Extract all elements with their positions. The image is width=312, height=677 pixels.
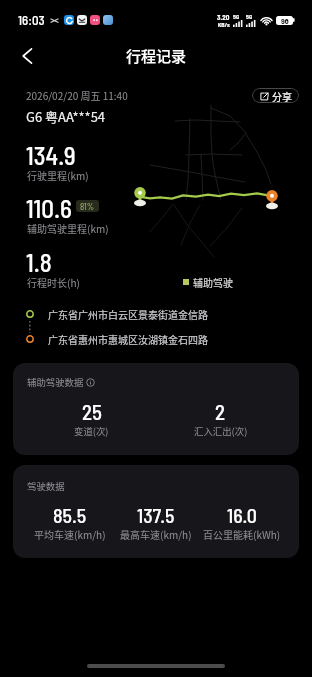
staticText: KB/s (218, 21, 230, 28)
button[interactable]: 分享 (252, 88, 299, 103)
staticText: 5G (246, 13, 253, 20)
staticText: 2 (215, 399, 226, 424)
staticText: 变道(次) (74, 424, 109, 438)
staticText: 5G (233, 13, 240, 20)
staticText: 2026/02/20 周五 11:40 (26, 88, 128, 102)
staticText: 行驶里程(km) (27, 168, 89, 182)
staticText: 平均车速(km/h) (34, 527, 106, 541)
button[interactable]: 辅助驾驶数据 (13, 363, 299, 455)
staticText: 137.5 (137, 503, 175, 527)
staticText: 85.5 (53, 503, 87, 527)
staticText: 行程时长(h) (27, 275, 80, 289)
staticText: 1.8 (26, 247, 52, 277)
staticText: 25 (82, 399, 102, 424)
button[interactable]: 驾驶数据 (13, 465, 299, 558)
staticText: 驾驶数据 (27, 479, 65, 493)
staticText: 行程记录 (126, 45, 187, 67)
staticText: 最高车速(km/h) (120, 527, 192, 541)
button[interactable]: Back (12, 41, 42, 71)
staticText: 百公里能耗(kWh) (203, 527, 281, 541)
staticText: G6 粤AA***54 (26, 107, 106, 126)
staticText: 96 (281, 16, 289, 25)
staticText: 110.6 (26, 193, 72, 223)
staticText: 辅助驾驶数据 (27, 375, 84, 389)
staticText: 辅助驾驶里程(km) (27, 221, 109, 235)
staticText: 81% (80, 201, 95, 212)
staticText: 广东省惠州市惠城区汝湖镇金石四路 (48, 332, 208, 346)
staticText: 134.9 (26, 140, 76, 170)
staticText: 分享 (272, 89, 292, 103)
staticText: 辅助驾驶 (193, 275, 233, 289)
staticText: 16.0 (227, 503, 257, 527)
staticText: 16:03 (18, 12, 45, 28)
staticText: 3.20 (217, 13, 230, 21)
staticText: 汇入汇出(次) (194, 424, 248, 438)
staticText: 广东省广州市白云区景泰街道金信路 (48, 307, 208, 321)
